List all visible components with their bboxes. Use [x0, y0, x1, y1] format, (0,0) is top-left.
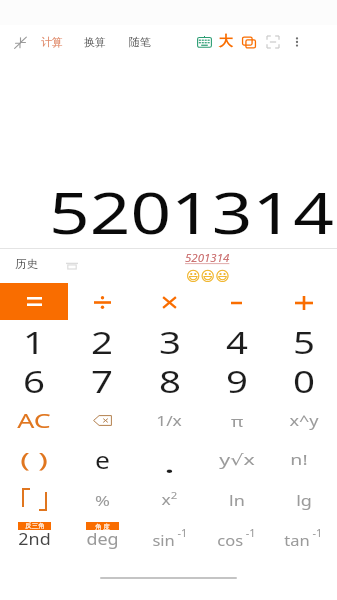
staticText: 3: [158, 322, 181, 361]
staticText: 9: [225, 361, 248, 400]
staticText: n!: [290, 449, 308, 469]
button[interactable]: 6: [0, 362, 68, 401]
staticText: 5201314: [49, 173, 335, 251]
staticText: 4: [225, 322, 248, 361]
button[interactable]: 3: [136, 323, 203, 362]
button[interactable]: x2: [136, 480, 203, 519]
button[interactable]: n!: [270, 441, 337, 480]
button[interactable]: [203, 283, 270, 322]
button[interactable]: AC: [0, 402, 68, 441]
staticText: ( ): [20, 446, 48, 473]
staticText: π: [231, 411, 243, 431]
staticText: 1: [22, 322, 45, 361]
button[interactable]: More options: [287, 25, 307, 59]
button[interactable]: [270, 283, 337, 322]
staticText: lg: [296, 490, 312, 510]
staticText: AC: [17, 407, 51, 434]
staticText: 历史: [15, 257, 38, 271]
staticText: 计算: [41, 35, 63, 49]
button[interactable]: 7: [68, 362, 136, 401]
button[interactable]: 9: [203, 362, 270, 401]
button[interactable]: Shrink window: [6, 25, 34, 59]
button[interactable]: 2: [68, 323, 136, 362]
staticText: cos -1: [217, 526, 256, 550]
button[interactable]: 0: [270, 362, 337, 401]
button[interactable]: 1: [0, 323, 68, 362]
button[interactable]: 换算: [84, 25, 106, 59]
staticText: 2: [90, 322, 113, 361]
button[interactable]: 8: [136, 362, 203, 401]
staticText: deg: [86, 528, 119, 550]
button[interactable]: [0, 283, 68, 322]
button[interactable]: 计算: [41, 25, 63, 59]
button[interactable]: 随笔: [129, 25, 151, 59]
button[interactable]: cos -1: [203, 520, 270, 559]
staticText: 大: [219, 33, 233, 51]
staticText: 反三角: [25, 522, 45, 530]
button[interactable]: 反三角: [0, 520, 68, 559]
button[interactable]: [136, 283, 203, 322]
staticText: 5: [292, 322, 315, 361]
button[interactable]: ( ): [0, 441, 68, 480]
staticText: 5201314: [185, 250, 230, 266]
staticText: y√x: [218, 449, 255, 469]
staticText: .: [164, 445, 175, 480]
staticText: 随笔: [129, 35, 151, 49]
button[interactable]: Split screen: [239, 25, 259, 59]
button[interactable]: y√x: [203, 441, 270, 480]
button[interactable]: ln: [203, 480, 270, 519]
staticText: 角 度: [95, 522, 110, 530]
staticText: 换算: [84, 35, 106, 49]
button[interactable]: sin -1: [136, 520, 203, 559]
staticText: x2: [162, 489, 178, 510]
button[interactable]: Font size: [216, 25, 236, 59]
staticText: 6: [22, 361, 45, 400]
staticText: tan -1: [284, 526, 323, 550]
staticText: 7: [90, 361, 113, 400]
button[interactable]: 角 度: [68, 520, 136, 559]
staticText: 1/x: [156, 410, 182, 430]
button[interactable]: 5: [270, 323, 337, 362]
staticText: e: [95, 444, 110, 475]
button[interactable]: Full screen: [263, 25, 283, 59]
button[interactable]: π: [203, 402, 270, 441]
button[interactable]: e: [68, 441, 136, 480]
button[interactable]: x^y: [270, 402, 337, 441]
button[interactable]: 1/x: [136, 402, 203, 441]
button[interactable]: [0, 480, 68, 519]
staticText: sin -1: [152, 526, 188, 550]
staticText: 8: [158, 361, 181, 400]
staticText: 😃😃😃: [186, 268, 230, 284]
button[interactable]: Sound: [66, 260, 78, 269]
staticText: x^y: [289, 410, 319, 430]
button[interactable]: Keyboard: [194, 25, 214, 59]
staticText: 2nd: [18, 528, 51, 550]
button[interactable]: 4: [203, 323, 270, 362]
staticText: %: [95, 490, 110, 510]
button[interactable]: 5201314: [185, 250, 230, 284]
button[interactable]: lg: [270, 480, 337, 519]
button[interactable]: .: [136, 441, 203, 480]
button[interactable]: [68, 402, 136, 441]
staticText: ln: [229, 490, 245, 510]
button[interactable]: 历史: [8, 249, 44, 283]
button[interactable]: tan -1: [270, 520, 337, 559]
button[interactable]: [68, 283, 136, 322]
button[interactable]: %: [68, 480, 136, 519]
staticText: 0: [292, 361, 315, 400]
